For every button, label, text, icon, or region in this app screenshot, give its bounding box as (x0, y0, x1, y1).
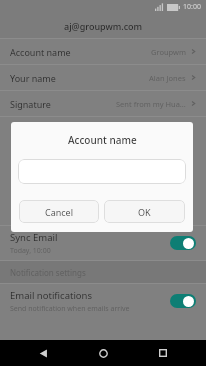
button[interactable]: Sync Email (0, 226, 206, 260)
staticText: Account name (68, 133, 137, 147)
staticText: Notification settings (10, 267, 86, 278)
staticText: Email notifications (10, 289, 93, 302)
staticText: Sync Email (10, 231, 58, 244)
button[interactable]: Sync Email toggle (170, 236, 196, 250)
staticText: 10:00 (183, 2, 201, 12)
staticText: Cancel (45, 206, 74, 218)
staticText: Send notification when emails arrive (10, 304, 130, 314)
staticText: Sent from my Hua... (116, 99, 186, 109)
button[interactable] (18, 159, 186, 184)
button[interactable]: OK (104, 200, 185, 223)
staticText: OK (138, 206, 151, 218)
staticText: Your name (10, 72, 56, 84)
button[interactable]: Cancel (19, 200, 99, 223)
button[interactable]: Back (26, 340, 60, 366)
staticText: Alan Jones (149, 73, 186, 83)
button[interactable]: Account name (0, 39, 206, 64)
staticText: Today, 10:00 (10, 246, 51, 256)
button[interactable]: Home (86, 340, 120, 366)
staticText: Signature (10, 98, 51, 110)
staticText: Account name (10, 46, 71, 58)
button[interactable]: Email notifications toggle (170, 294, 196, 308)
button[interactable]: Your name (0, 65, 206, 90)
button[interactable]: Email notifications (0, 284, 206, 318)
button[interactable]: Recent apps (146, 340, 180, 366)
staticText: Groupwm (151, 47, 186, 57)
staticText: aj@groupwm.com (64, 20, 143, 32)
button[interactable]: Signature (0, 91, 206, 116)
